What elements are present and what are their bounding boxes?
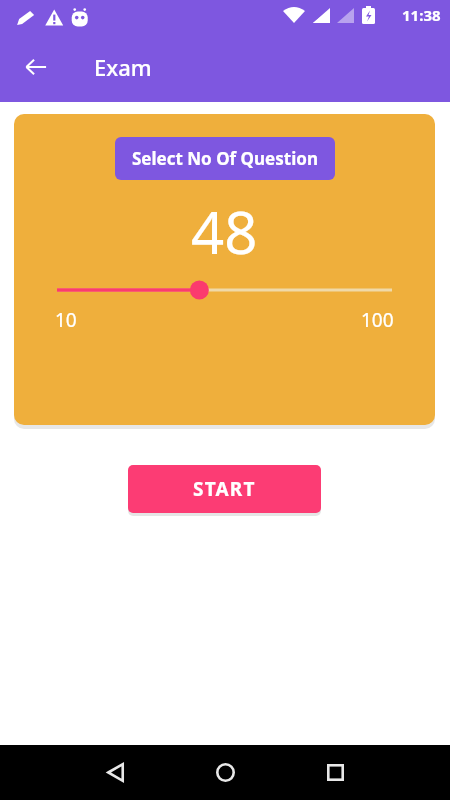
button[interactable]: Back bbox=[12, 43, 60, 91]
staticText: Select No Of Question bbox=[132, 147, 318, 170]
staticText: START bbox=[193, 476, 256, 502]
button[interactable]: START bbox=[128, 465, 321, 513]
staticText: 48 bbox=[191, 192, 258, 271]
staticText: 100 bbox=[361, 307, 394, 333]
staticText: 11:38 bbox=[402, 5, 441, 25]
button[interactable]: Home bbox=[170, 745, 280, 800]
button[interactable]: Recents bbox=[280, 745, 390, 800]
staticText: Exam bbox=[94, 52, 152, 82]
button[interactable]: Back bbox=[60, 745, 170, 800]
button[interactable] bbox=[57, 278, 392, 302]
button[interactable]: Select No Of Question bbox=[115, 137, 335, 180]
staticText: 10 bbox=[55, 307, 77, 333]
